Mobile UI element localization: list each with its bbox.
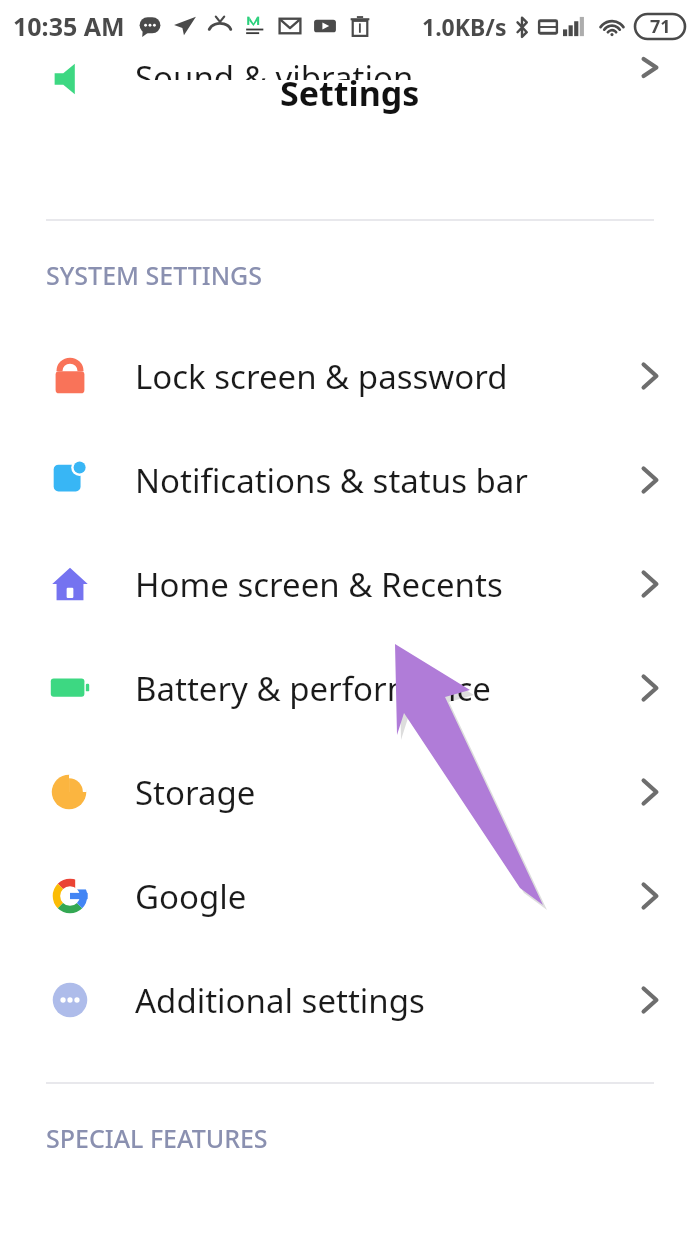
- button[interactable]: Home screen & Recents: [0, 532, 700, 636]
- button[interactable]: Storage: [0, 740, 700, 844]
- staticText: Home screen & Recents: [135, 562, 503, 607]
- button[interactable]: Notifications & status bar: [0, 428, 700, 532]
- staticText: Notifications & status bar: [135, 458, 528, 503]
- button[interactable]: Lock screen & password: [0, 324, 700, 428]
- button[interactable]: Google: [0, 844, 700, 948]
- staticText: Lock screen & password: [135, 354, 508, 399]
- staticText: Settings: [280, 70, 420, 116]
- staticText: 71: [650, 14, 671, 39]
- button[interactable]: Additional settings: [0, 948, 700, 1052]
- staticText: Additional settings: [135, 978, 425, 1023]
- staticText: 1.0KB/s: [422, 11, 507, 42]
- staticText: Battery & performance: [135, 666, 491, 711]
- staticText: SPECIAL FEATURES: [46, 1121, 268, 1155]
- staticText: 10:35 AM: [13, 9, 125, 43]
- staticText: Sound & vibration: [135, 55, 414, 80]
- staticText: Storage: [135, 770, 256, 815]
- button[interactable]: Battery & performance: [0, 636, 700, 740]
- staticText: Google: [135, 874, 247, 919]
- staticText: SYSTEM SETTINGS: [46, 258, 262, 292]
